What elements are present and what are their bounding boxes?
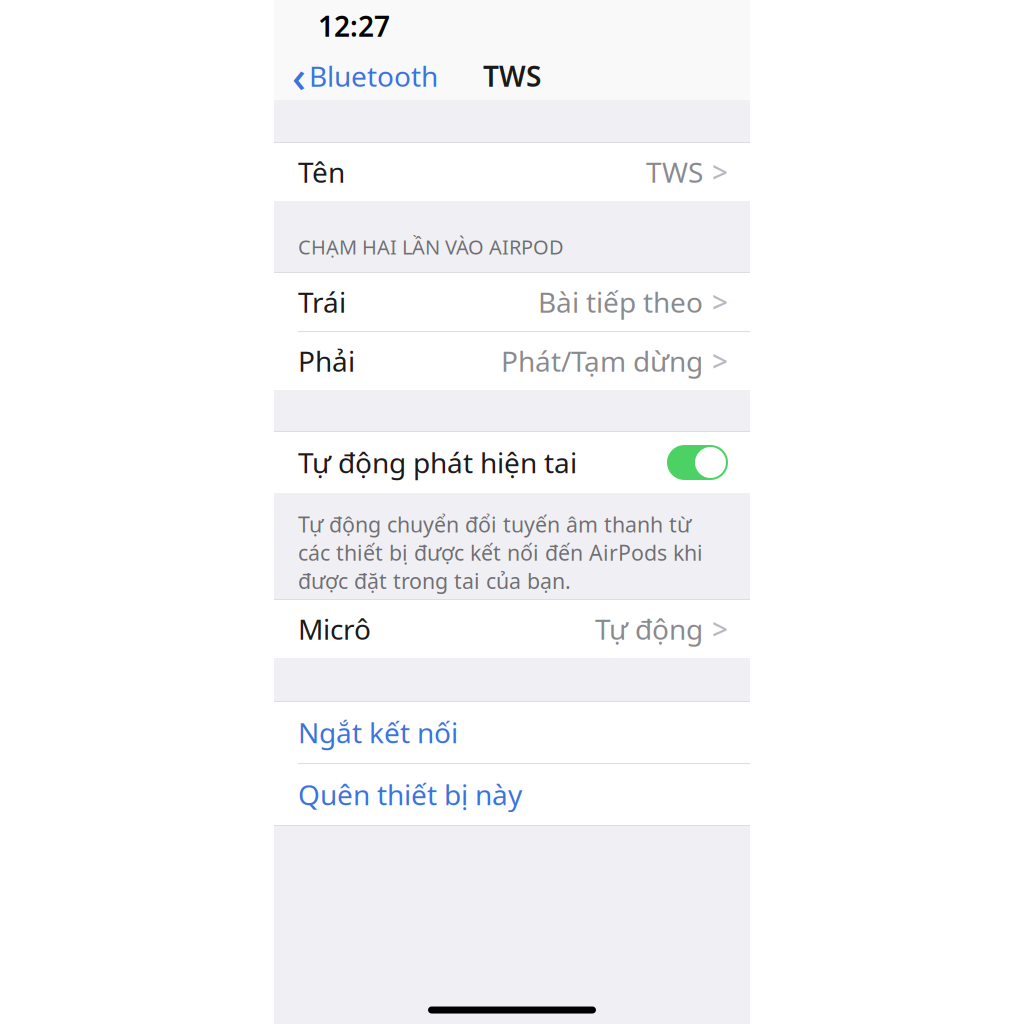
button[interactable]: ‹: [274, 52, 448, 100]
staticText: Bluetooth: [309, 57, 438, 95]
staticText: Micrô: [298, 610, 371, 648]
button[interactable]: Tự động phát hiện tai: [667, 445, 728, 480]
staticText: CHẠM HAI LẦN VÀO AIRPOD: [298, 233, 564, 260]
staticText: Tự động phát hiện tai: [298, 444, 577, 481]
button[interactable]: Micrô: [274, 600, 750, 658]
staticText: Phải: [298, 342, 355, 380]
staticText: >: [712, 153, 728, 191]
staticText: Quên thiết bị này: [298, 776, 522, 813]
staticText: >: [712, 342, 728, 380]
button[interactable]: Ngắt kết nối: [274, 702, 750, 763]
staticText: >: [712, 610, 728, 648]
button[interactable]: Trái: [274, 273, 750, 331]
staticText: Tên: [298, 153, 345, 191]
staticText: Phát/Tạm dừng: [501, 342, 703, 380]
staticText: Tự động chuyển đổi tuyến âm thanh từ các…: [298, 510, 703, 595]
staticText: Bài tiếp theo: [538, 283, 703, 321]
staticText: Ngắt kết nối: [298, 714, 458, 751]
button[interactable]: Quên thiết bị này: [274, 764, 750, 825]
button[interactable]: Tên: [274, 143, 750, 201]
staticText: 12:27: [318, 7, 390, 45]
staticText: Tự động: [595, 610, 703, 648]
staticText: TWS: [483, 57, 541, 95]
button[interactable]: Phải: [274, 332, 750, 390]
staticText: TWS: [646, 153, 703, 191]
staticText: ‹: [292, 48, 306, 104]
staticText: Trái: [298, 283, 346, 321]
staticText: >: [712, 283, 728, 321]
